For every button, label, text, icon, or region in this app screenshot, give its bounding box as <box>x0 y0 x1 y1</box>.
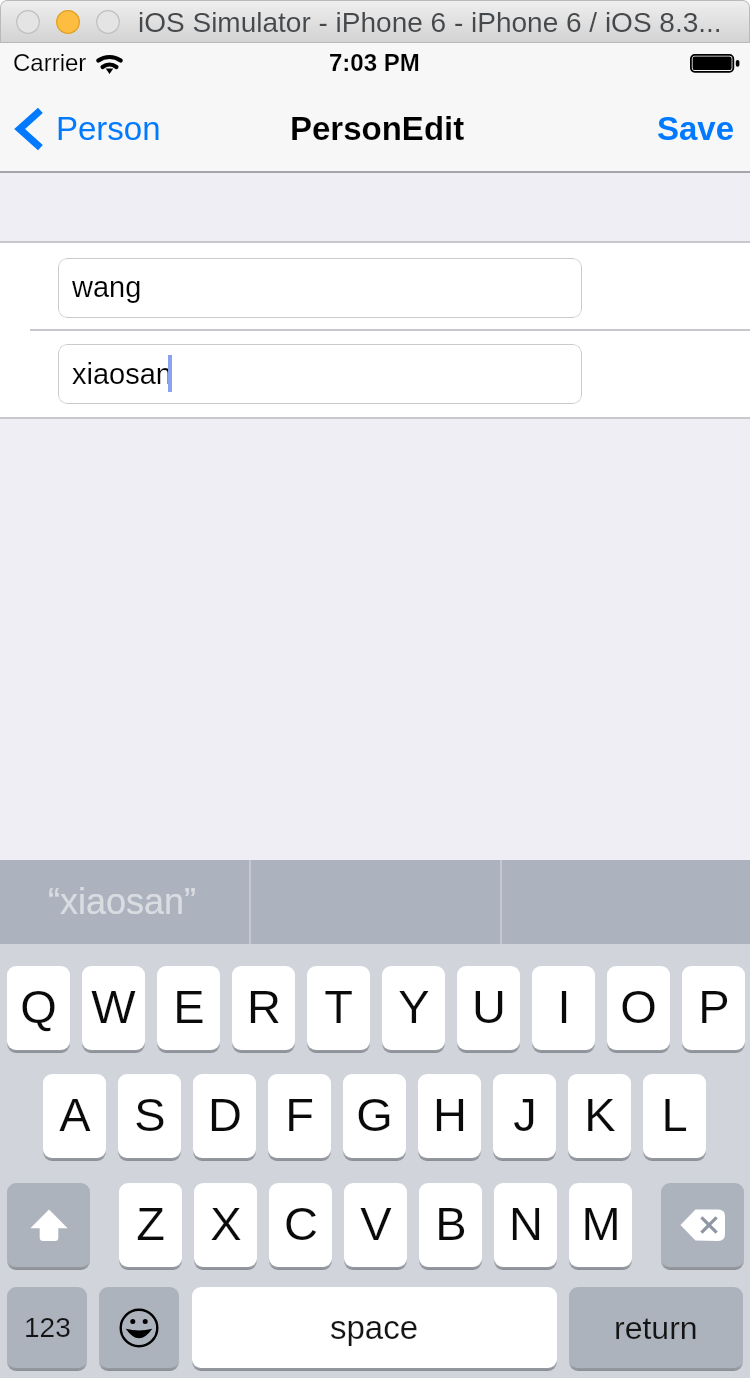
button[interactable]: space <box>192 1287 557 1368</box>
button[interactable]: S <box>118 1074 181 1158</box>
button[interactable]: C <box>269 1183 332 1267</box>
staticText: J <box>513 1088 537 1141</box>
staticText: B <box>435 1197 467 1250</box>
button[interactable]: M <box>569 1183 632 1267</box>
staticText: return <box>614 1310 698 1346</box>
button[interactable]: L <box>643 1074 706 1158</box>
staticText: xiaosan <box>72 358 172 390</box>
staticText: S <box>134 1088 166 1141</box>
staticText: F <box>285 1088 314 1141</box>
button[interactable]: D <box>193 1074 256 1158</box>
staticText: space <box>330 1309 419 1346</box>
staticText: iOS Simulator - iPhone 6 - iPhone 6 / iO… <box>138 7 722 38</box>
button[interactable]: Shift <box>7 1183 90 1267</box>
button[interactable]: H <box>418 1074 481 1158</box>
staticText: P <box>698 980 730 1033</box>
button[interactable]: F <box>268 1074 331 1158</box>
button[interactable]: Q <box>7 966 70 1050</box>
staticText: H <box>433 1088 467 1141</box>
staticText: E <box>173 980 205 1033</box>
button[interactable]: Person <box>4 100 174 168</box>
button[interactable]: xiaosan <box>58 344 582 404</box>
staticText: PersonEdit <box>290 110 465 147</box>
button[interactable]: Y <box>382 966 445 1050</box>
button[interactable]: Save <box>641 100 750 157</box>
button[interactable]: Z <box>119 1183 182 1267</box>
button[interactable]: Zoom <box>96 10 120 34</box>
staticText: Q <box>20 980 57 1033</box>
button[interactable]: Minimize <box>56 10 80 34</box>
staticText: Z <box>136 1197 165 1250</box>
staticText: Carrier <box>13 49 87 76</box>
button[interactable]: Backspace <box>661 1183 744 1267</box>
button[interactable]: R <box>232 966 295 1050</box>
button[interactable]: K <box>568 1074 631 1158</box>
staticText: A <box>59 1088 91 1141</box>
button[interactable]: J <box>493 1074 556 1158</box>
staticText: M <box>581 1197 621 1250</box>
staticText: I <box>557 980 571 1033</box>
button[interactable]: I <box>532 966 595 1050</box>
button[interactable]: return <box>569 1287 743 1368</box>
button[interactable]: V <box>344 1183 407 1267</box>
button[interactable]: Emoji <box>99 1287 179 1368</box>
button[interactable]: B <box>419 1183 482 1267</box>
staticText: G <box>356 1088 393 1141</box>
staticText: “xiaosan” <box>48 881 197 921</box>
button[interactable]: U <box>457 966 520 1050</box>
button[interactable]: X <box>194 1183 257 1267</box>
staticText: O <box>620 980 657 1033</box>
staticText: 123 <box>24 1312 71 1343</box>
staticText: Save <box>657 110 735 147</box>
staticText: T <box>324 980 353 1033</box>
staticText: W <box>91 980 136 1033</box>
staticText: K <box>584 1088 616 1141</box>
button[interactable]: W <box>82 966 145 1050</box>
button[interactable]: “xiaosan” <box>0 860 249 944</box>
staticText: L <box>661 1088 688 1141</box>
button[interactable]: Close <box>16 10 40 34</box>
staticText: R <box>247 980 281 1033</box>
button[interactable]: G <box>343 1074 406 1158</box>
button[interactable]: N <box>494 1183 557 1267</box>
button[interactable]: E <box>157 966 220 1050</box>
staticText: U <box>472 980 506 1033</box>
button[interactable]: wang <box>58 258 582 318</box>
staticText: 7:03 PM <box>329 49 420 76</box>
button[interactable]: T <box>307 966 370 1050</box>
staticText: N <box>509 1197 543 1250</box>
staticText: wang <box>72 271 142 303</box>
staticText: V <box>360 1197 392 1250</box>
staticText: Person <box>56 110 161 147</box>
button[interactable]: P <box>682 966 745 1050</box>
staticText: X <box>210 1197 242 1250</box>
button[interactable]: Numbers <box>7 1287 87 1368</box>
staticText: D <box>208 1088 242 1141</box>
button[interactable]: A <box>43 1074 106 1158</box>
staticText: Y <box>398 980 430 1033</box>
staticText: C <box>284 1197 318 1250</box>
button[interactable]: O <box>607 966 670 1050</box>
